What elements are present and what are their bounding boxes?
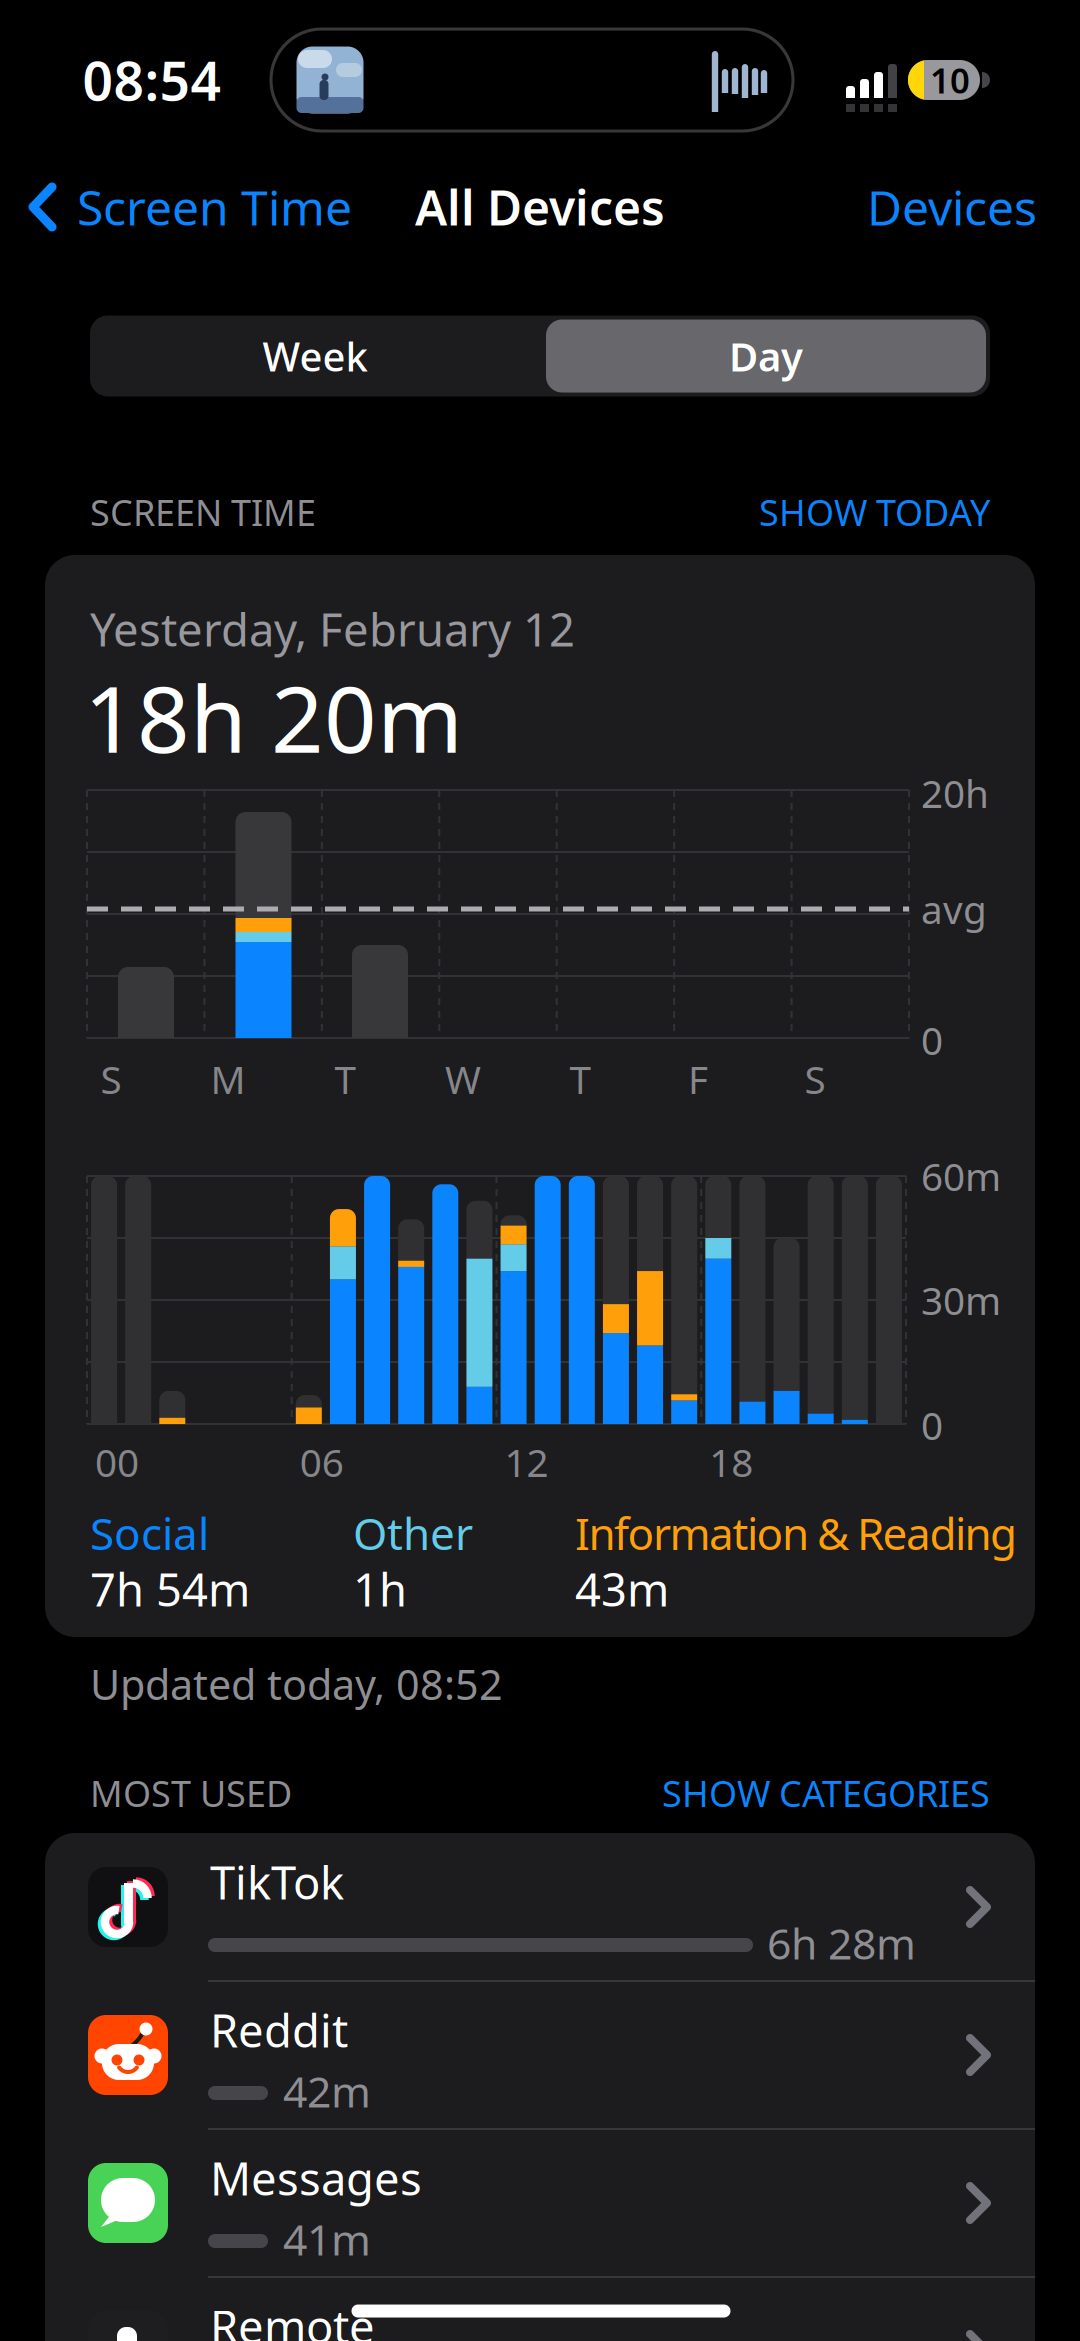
button[interactable]: TikTok	[45, 1833, 1035, 1981]
staticText: 0	[921, 1014, 943, 1066]
staticText: 00	[95, 1436, 139, 1488]
staticText: SCREEN TIME	[90, 488, 316, 536]
staticText: Devices	[867, 175, 1037, 239]
staticText: F	[688, 1053, 708, 1105]
staticText: 42m	[283, 2063, 371, 2119]
staticText: 6h 28m	[767, 1915, 916, 1971]
staticText: M	[210, 1053, 245, 1105]
staticText: 0	[921, 1399, 943, 1451]
staticText: 10	[930, 57, 970, 103]
button[interactable]: Day	[546, 319, 986, 392]
staticText: Remote	[210, 2296, 375, 2341]
staticText: Messages	[210, 2148, 422, 2208]
staticText: S	[100, 1053, 121, 1105]
staticText: W	[445, 1053, 481, 1105]
staticText: SHOW TODAY	[759, 488, 990, 536]
staticText: Information & Reading	[575, 1504, 1017, 1562]
button[interactable]: SHOW TODAY	[759, 488, 990, 536]
button[interactable]: Devices	[737, 175, 1037, 239]
staticText: 12	[504, 1436, 548, 1488]
button[interactable]: Messages	[45, 2129, 1035, 2277]
staticText: T	[569, 1053, 590, 1105]
staticText: TikTok	[210, 1852, 344, 1912]
button[interactable]: Screen Time	[28, 179, 428, 235]
staticText: 20h	[921, 767, 989, 819]
staticText: Screen Time	[77, 175, 352, 239]
button[interactable]: Remote	[45, 2277, 1035, 2341]
staticText: Day	[729, 329, 803, 382]
staticText: T	[334, 1053, 355, 1105]
staticText: Reddit	[210, 2000, 348, 2060]
staticText: S	[804, 1053, 825, 1105]
staticText: Updated today, 08:52	[90, 1657, 503, 1711]
staticText: 18h 20m	[84, 656, 463, 778]
staticText: avg	[921, 883, 987, 935]
staticText: 41m	[283, 2211, 371, 2267]
staticText: 18	[709, 1436, 753, 1488]
staticText: 43m	[575, 1559, 669, 1619]
staticText: 60m	[921, 1150, 1001, 1202]
button[interactable]: Reddit	[45, 1981, 1035, 2129]
staticText: Social	[90, 1504, 209, 1562]
staticText: 7h 54m	[90, 1559, 250, 1619]
button[interactable]: Week	[95, 315, 535, 396]
staticText: Yesterday, February 12	[90, 599, 575, 659]
staticText: Week	[262, 329, 367, 382]
staticText: MOST USED	[90, 1769, 292, 1817]
staticText: All Devices	[415, 175, 665, 239]
staticText: Other	[353, 1504, 473, 1562]
staticText: 06	[300, 1436, 344, 1488]
staticText: SHOW CATEGORIES	[662, 1769, 990, 1817]
staticText: 30m	[921, 1274, 1001, 1326]
staticText: 08:54	[82, 45, 221, 115]
button[interactable]: SHOW CATEGORIES	[662, 1769, 990, 1817]
staticText: 1h	[353, 1559, 407, 1619]
